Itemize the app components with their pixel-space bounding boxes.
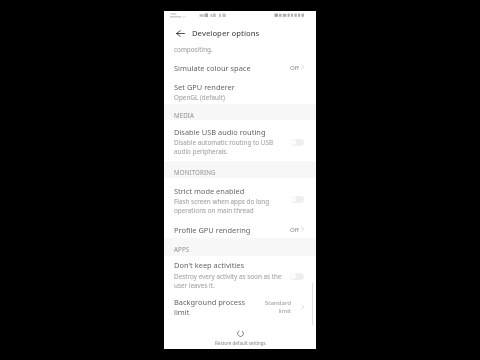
staticText: Strict mode enabled [174,186,245,196]
staticText: Set GPU renderer [174,82,235,92]
staticText: Developer options [192,28,260,38]
button[interactable] [164,219,316,236]
staticText: APPS [174,245,190,253]
staticText: Restore default settings [215,340,266,346]
staticText: OpenGL (default) [174,93,225,102]
staticText: Don't keep activities [174,260,245,270]
staticText: Disable automatic routing to USB audio p… [174,138,274,156]
staticText: Off [290,63,299,71]
staticText: Off [290,225,299,233]
staticText: Destroy every activity as soon as the us… [174,272,282,290]
staticText: Flash screen when apps do long operation… [174,197,270,215]
staticText: MONITORING [174,168,216,176]
staticText: MEDIA [174,111,195,119]
button[interactable]: Restore default settings [164,326,316,348]
button[interactable] [164,76,316,103]
button[interactable] [164,58,316,75]
staticText: Simulate colour space [174,63,251,73]
button[interactable] [164,184,316,214]
staticText: compositing. [174,45,213,54]
button[interactable] [164,258,316,288]
staticText: Profile GPU rendering [174,225,251,235]
staticText: Standard limit [264,298,291,314]
button[interactable] [164,125,316,155]
staticText: Disable USB audio routing [174,127,266,137]
staticText: Background process limit [174,297,246,317]
button[interactable] [164,295,316,322]
button[interactable]: Back [171,24,189,42]
